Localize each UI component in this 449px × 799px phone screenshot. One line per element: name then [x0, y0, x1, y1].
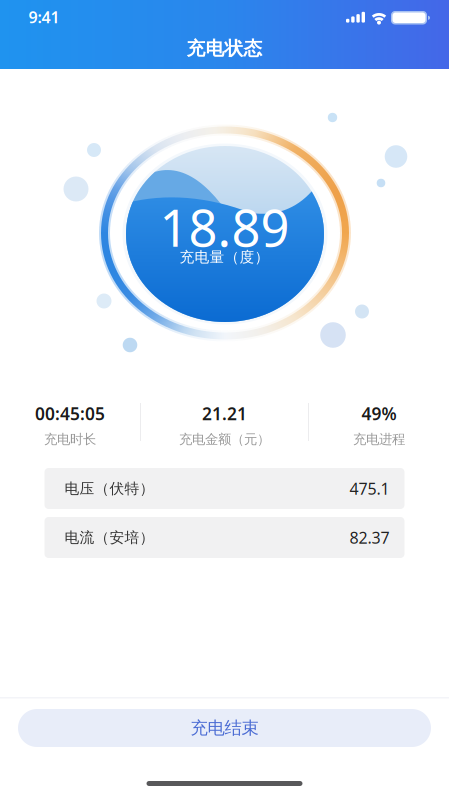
staticText: 电压（伏特） [64, 479, 154, 497]
staticText: 充电金额（元） [179, 431, 270, 447]
staticText: 475.1 [349, 478, 389, 499]
staticText: 电流（安培） [64, 528, 154, 546]
staticText: 18.89 [159, 193, 289, 261]
staticText: 00:45:05 [35, 402, 105, 425]
staticText: 82.37 [349, 527, 389, 548]
staticText: 充电量（度） [179, 248, 269, 266]
staticText: 充电状态 [186, 37, 262, 60]
button[interactable]: 充电结束 [18, 709, 431, 747]
staticText: 49% [361, 402, 396, 425]
staticText: 充电进程 [353, 431, 405, 447]
staticText: 充电时长 [44, 431, 96, 447]
staticText: 9:41 [28, 6, 59, 28]
staticText: 充电结束 [190, 717, 258, 739]
staticText: 21.21 [202, 402, 247, 425]
